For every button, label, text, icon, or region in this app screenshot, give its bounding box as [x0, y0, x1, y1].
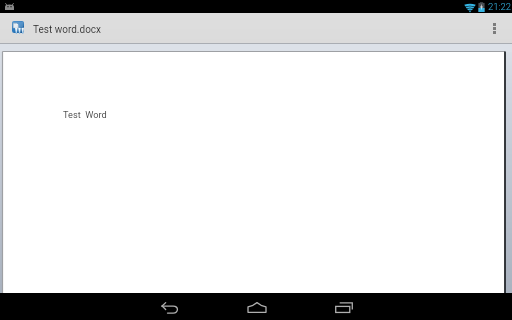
button[interactable]: Back	[126, 293, 213, 320]
staticText: Test Word	[63, 109, 107, 120]
staticText: 21:22	[488, 1, 512, 12]
button[interactable]: Home	[213, 293, 300, 320]
button[interactable]: More options	[481, 13, 512, 44]
staticText: Test word.docx	[33, 24, 102, 36]
button[interactable]: Recent apps	[300, 293, 387, 320]
